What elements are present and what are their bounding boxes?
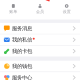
button[interactable]: 我的卡包 xyxy=(0,46,80,57)
staticText: 我的钱包 xyxy=(12,63,32,69)
button[interactable]: 服务消息 xyxy=(0,23,80,34)
button[interactable]: 我的钱包 xyxy=(0,61,80,72)
button[interactable]: 会员 xyxy=(27,4,53,14)
staticText: 我的卡包 xyxy=(12,48,32,54)
button[interactable]: 服务中心 xyxy=(0,72,80,80)
staticText: 服务中心 xyxy=(12,74,32,80)
staticText: 服务消息 xyxy=(12,25,32,32)
staticText: 会员 xyxy=(36,9,44,14)
button[interactable]: 设置 xyxy=(53,4,80,14)
staticText: 账单 xyxy=(9,9,17,14)
button[interactable]: 账单 xyxy=(0,4,27,14)
staticText: 我的私信 xyxy=(12,36,32,43)
button[interactable]: 我的私信 xyxy=(0,34,80,45)
staticText: 设置 xyxy=(63,9,71,14)
